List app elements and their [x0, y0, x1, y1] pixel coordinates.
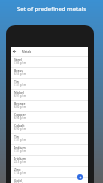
staticText: Gold	[14, 178, 22, 183]
staticText: 8.91 g/cm	[14, 94, 27, 98]
staticText: 7.31 g/cm	[14, 83, 27, 87]
button[interactable]: Steel	[11, 56, 88, 67]
button[interactable]: Nickel	[11, 89, 88, 100]
staticText: 7.14 g/cm	[14, 171, 27, 175]
button[interactable]: Back	[12, 49, 17, 54]
button[interactable]: Zinc	[11, 166, 88, 177]
button[interactable]: Gold	[11, 177, 88, 183]
staticText: 8.55 g/cm	[14, 72, 27, 76]
staticText: Steel	[14, 57, 22, 62]
staticText: 7.31 g/cm	[14, 138, 27, 142]
staticText: 8.90 g/cm	[14, 127, 27, 131]
staticText: Iridium	[14, 156, 26, 161]
staticText: 22.5 g/cm	[14, 160, 27, 164]
staticText: Tin	[14, 134, 19, 139]
staticText: Cobalt	[14, 123, 25, 128]
button[interactable]: Tin	[11, 133, 88, 144]
staticText: Copper	[14, 112, 26, 117]
staticText: Set of predefined metals	[0, 5, 103, 13]
staticText: Bronze	[14, 101, 26, 106]
staticText: 8.80 g/cm	[14, 105, 27, 109]
staticText: 7.31 g/cm	[14, 149, 27, 153]
button[interactable]: Tin	[11, 78, 88, 89]
staticText: Zinc	[14, 167, 21, 172]
button[interactable]: Iridium	[11, 155, 88, 166]
staticText: Nickel	[14, 90, 24, 95]
staticText: Brass	[14, 68, 23, 73]
button[interactable]: Cobalt	[11, 122, 88, 133]
staticText: Tin	[14, 79, 19, 84]
button[interactable]: Bronze	[11, 100, 88, 111]
button[interactable]: Back	[11, 47, 88, 56]
button[interactable]: Add	[77, 174, 83, 180]
staticText: Indium	[14, 145, 26, 150]
button[interactable]: Indium	[11, 144, 88, 155]
button[interactable]: Brass	[11, 67, 88, 78]
staticText: 7.85 g/cm	[14, 61, 27, 65]
staticText: 8.96 g/cm	[14, 116, 27, 120]
staticText: Metals	[22, 50, 32, 54]
button[interactable]: Copper	[11, 111, 88, 122]
staticText: 19.3 g/cm	[14, 182, 27, 183]
